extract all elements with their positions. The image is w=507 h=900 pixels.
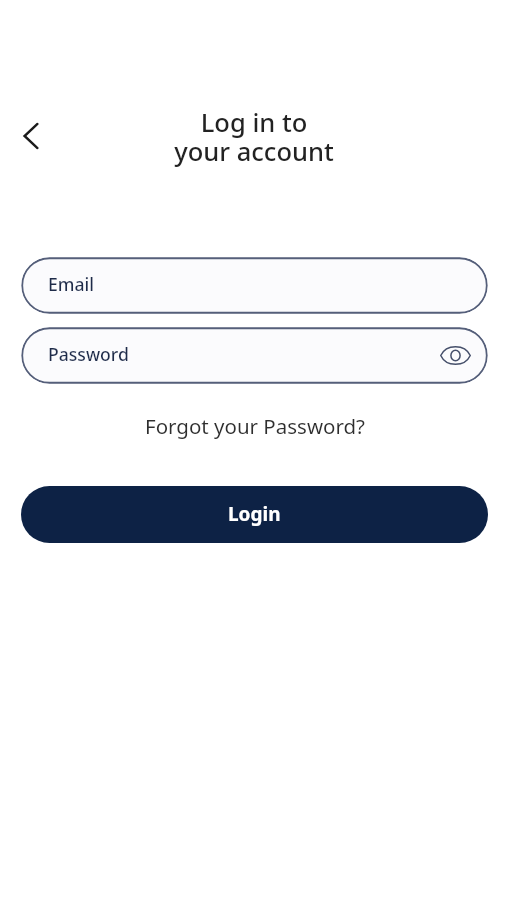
staticText: Email bbox=[48, 272, 95, 296]
button[interactable]: Password bbox=[21, 327, 488, 384]
staticText: Forgot your Password? bbox=[145, 412, 365, 440]
button[interactable]: Back bbox=[9, 114, 53, 158]
staticText: Password bbox=[48, 342, 129, 366]
button[interactable]: Email bbox=[21, 257, 488, 314]
button[interactable]: Forgot your Password? bbox=[137, 408, 373, 444]
staticText: Log in to your account bbox=[174, 105, 334, 168]
button[interactable]: Login bbox=[21, 486, 488, 543]
staticText: Login bbox=[228, 501, 281, 527]
button[interactable]: Show password bbox=[437, 337, 473, 373]
